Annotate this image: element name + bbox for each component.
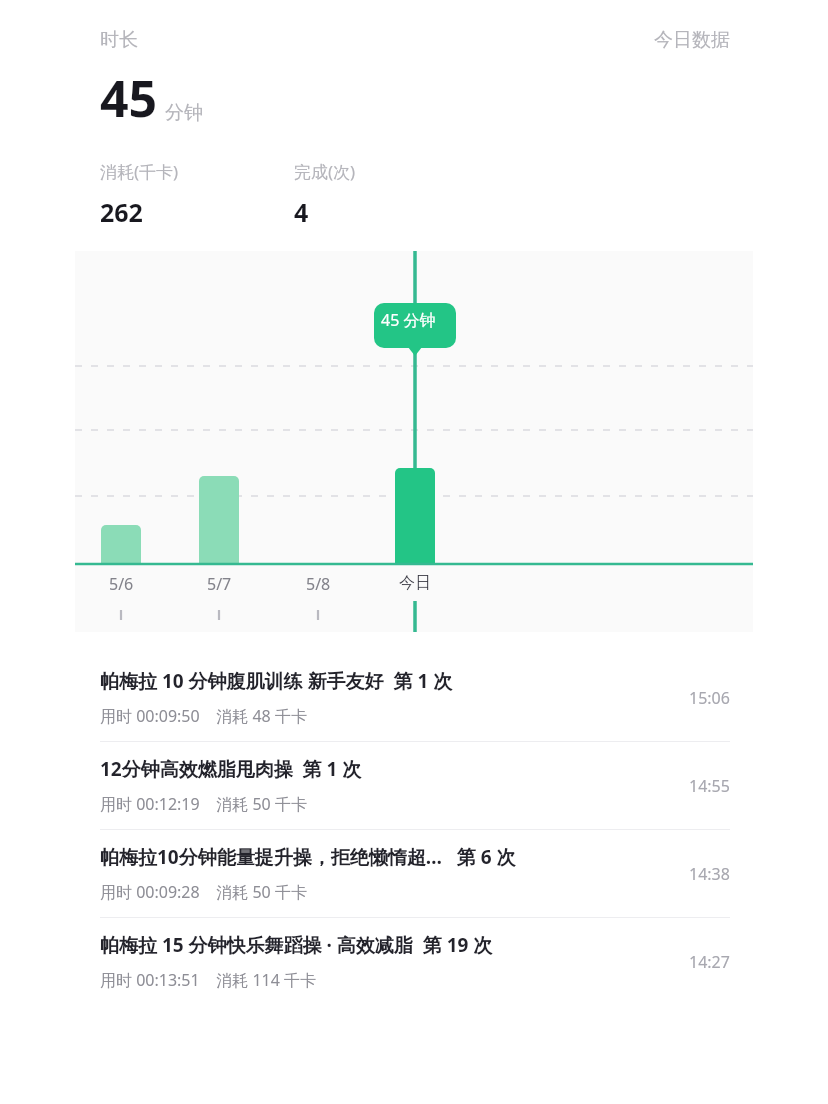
button[interactable]: 今日数据 [654, 28, 730, 52]
staticText: 262 [100, 195, 143, 229]
staticText: 今日数据 [654, 28, 730, 52]
staticText: 用时 00:13:51 消耗 114 千卡 [100, 969, 317, 991]
staticText: 今日 [399, 573, 431, 593]
staticText: 完成(次) [294, 160, 356, 183]
staticText: 12分钟高效燃脂甩肉操 第 1 次 [100, 756, 362, 782]
staticText: 帕梅拉 15 分钟快乐舞蹈操 · 高效减脂 第 19 次 [100, 932, 493, 958]
button[interactable]: 帕梅拉 15 分钟快乐舞蹈操 · 高效减脂 第 19 次 [0, 918, 828, 1005]
staticText: 15:06 [689, 687, 730, 709]
staticText: 4 [294, 195, 309, 229]
button[interactable]: 12分钟高效燃脂甩肉操 第 1 次 [0, 742, 828, 829]
staticText: 14:38 [689, 863, 730, 885]
staticText: 用时 00:09:50 消耗 48 千卡 [100, 705, 307, 727]
button[interactable]: 每日时长柱状图 [75, 251, 753, 632]
staticText: 45 [100, 64, 158, 132]
staticText: 分钟 [165, 101, 203, 125]
staticText: 用时 00:09:28 消耗 50 千卡 [100, 881, 307, 903]
staticText: 5/6 [109, 573, 134, 595]
staticText: 45 分钟 [381, 309, 436, 331]
staticText: 帕梅拉10分钟能量提升操，拒绝懒惰超… 第 6 次 [100, 844, 516, 870]
button[interactable]: 帕梅拉10分钟能量提升操，拒绝懒惰超… 第 6 次 [0, 830, 828, 917]
staticText: 14:55 [689, 775, 730, 797]
staticText: 消耗(千卡) [100, 160, 179, 183]
button[interactable]: 帕梅拉 10 分钟腹肌训练 新手友好 第 1 次 [0, 654, 828, 741]
staticText: 时长 [100, 28, 138, 52]
staticText: 5/7 [207, 573, 232, 595]
staticText: 5/8 [306, 573, 331, 595]
staticText: 14:27 [689, 951, 730, 973]
staticText: 用时 00:12:19 消耗 50 千卡 [100, 793, 307, 815]
staticText: 帕梅拉 10 分钟腹肌训练 新手友好 第 1 次 [100, 668, 453, 694]
